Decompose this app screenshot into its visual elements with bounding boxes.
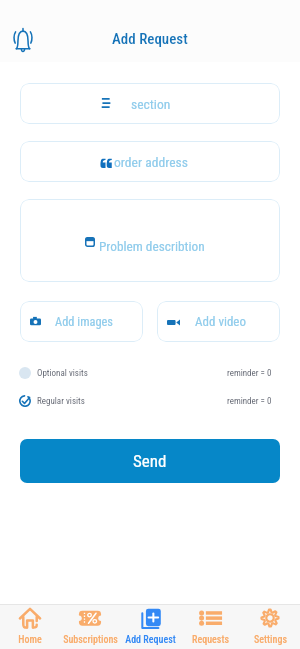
button[interactable]: Subscriptions [60,605,120,649]
button[interactable]: Regular visits [19,390,272,412]
button[interactable]: Problem describtion [20,199,280,282]
button[interactable]: Notifications [9,24,37,52]
staticText: Settings [254,634,287,646]
button[interactable]: section [20,83,280,124]
button[interactable]: Send [20,439,280,483]
button[interactable]: Home [0,605,60,649]
staticText: Add video [195,314,246,329]
button[interactable]: Requests [180,605,240,649]
staticText: Requests [192,634,229,646]
staticText: reminder = 0 [227,396,272,407]
staticText: Subscriptions [63,634,118,646]
staticText: Add Request [112,30,188,48]
staticText: Home [18,634,42,646]
staticText: Regular visits [37,396,85,407]
staticText: Add Request [125,634,176,646]
staticText: Send [133,451,167,471]
staticText: section [131,96,171,112]
button[interactable]: Add images [20,301,143,342]
button[interactable]: Add Request [120,605,180,649]
staticText: reminder = 0 [227,368,272,379]
staticText: Add images [55,314,113,329]
button[interactable]: Optional visits [19,362,272,384]
button[interactable]: order address [20,141,280,182]
staticText: Optional visits [37,368,88,379]
button[interactable]: Settings [240,605,300,649]
button[interactable]: Add video [157,301,280,342]
staticText: order address [114,154,189,170]
staticText: Problem describtion [99,239,205,255]
